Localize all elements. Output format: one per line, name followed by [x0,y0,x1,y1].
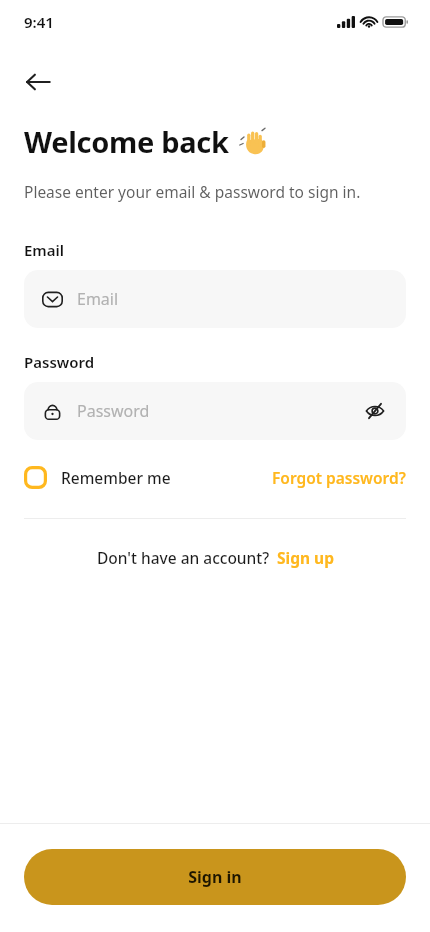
button[interactable]: Password [24,382,406,440]
button[interactable]: Back [14,58,62,106]
staticText: Welcome back [24,122,229,161]
staticText: 9:41 [24,12,54,32]
staticText: Email [77,288,119,310]
button[interactable]: Sign in [24,849,406,905]
button[interactable]: Forgot password? [272,467,406,488]
button[interactable]: Remember me [24,466,171,489]
staticText: Password [77,400,358,422]
button[interactable]: Sign up [277,547,334,568]
button[interactable]: Email [24,270,406,328]
staticText: Sign in [188,866,242,888]
button[interactable]: Show password [358,394,392,428]
staticText: Please enter your email & password to si… [24,181,361,202]
staticText: Remember me [61,467,171,488]
staticText: Don't have an account? [97,547,270,568]
staticText: Email [24,240,65,260]
staticText: Password [24,352,95,372]
staticText: Forgot password? [272,467,406,488]
staticText: Sign up [277,547,334,568]
